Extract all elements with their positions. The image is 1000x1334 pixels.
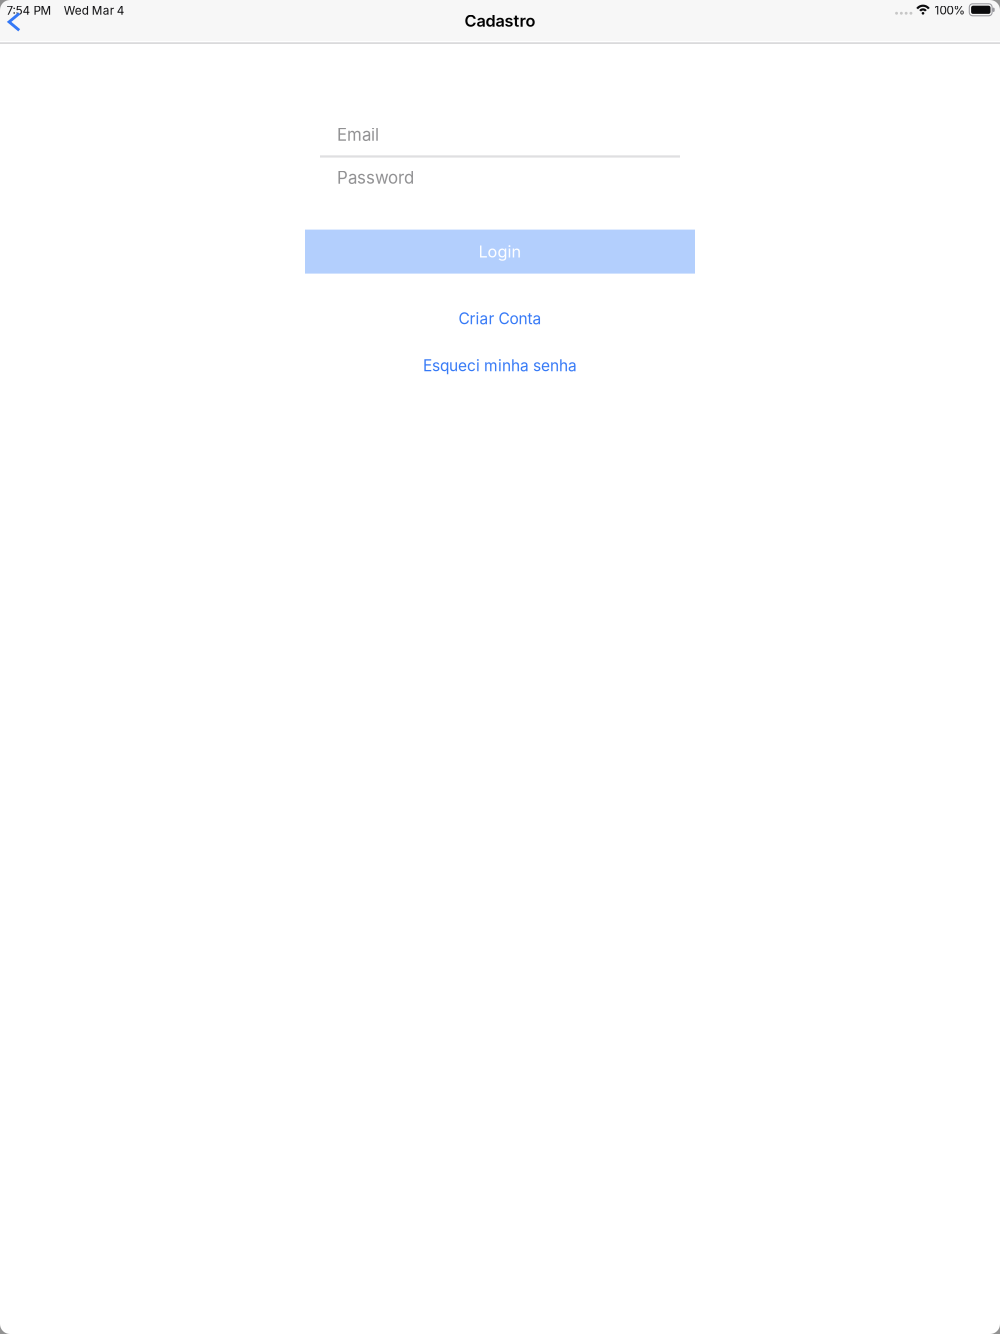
button[interactable]: Back: [0, 0, 31, 38]
staticText: Criar Conta: [458, 309, 541, 328]
staticText: Login: [478, 242, 521, 261]
button[interactable]: Criar Conta: [305, 308, 695, 330]
button[interactable]: Email: [320, 118, 680, 158]
button[interactable]: Login: [305, 230, 695, 274]
staticText: Email: [337, 125, 379, 145]
staticText: Password: [337, 168, 414, 188]
staticText: 100%: [934, 3, 965, 17]
button[interactable]: Password: [320, 158, 680, 201]
staticText: Cadastro: [464, 11, 535, 31]
staticText: Wed Mar 4: [64, 3, 125, 18]
staticText: 7:54 PM: [7, 3, 52, 18]
button[interactable]: Esqueci minha senha: [305, 355, 695, 377]
staticText: Esqueci minha senha: [423, 356, 577, 375]
